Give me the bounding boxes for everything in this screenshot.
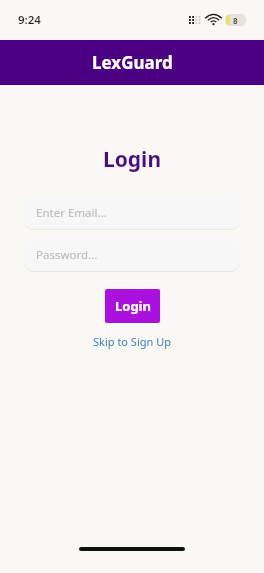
staticText: Login xyxy=(115,297,151,315)
staticText: 9:24 xyxy=(18,12,41,28)
button[interactable]: Skip to Sign Up xyxy=(87,332,177,351)
button[interactable]: Login xyxy=(105,289,160,323)
staticText: Password... xyxy=(36,247,98,263)
button[interactable]: Enter Email... xyxy=(24,196,240,229)
staticText: 8 xyxy=(233,15,238,26)
staticText: Enter Email... xyxy=(36,205,107,221)
staticText: LexGuard xyxy=(92,51,173,74)
staticText: Login xyxy=(0,145,264,174)
staticText: Skip to Sign Up xyxy=(93,334,171,349)
button[interactable]: Password... xyxy=(24,238,240,271)
